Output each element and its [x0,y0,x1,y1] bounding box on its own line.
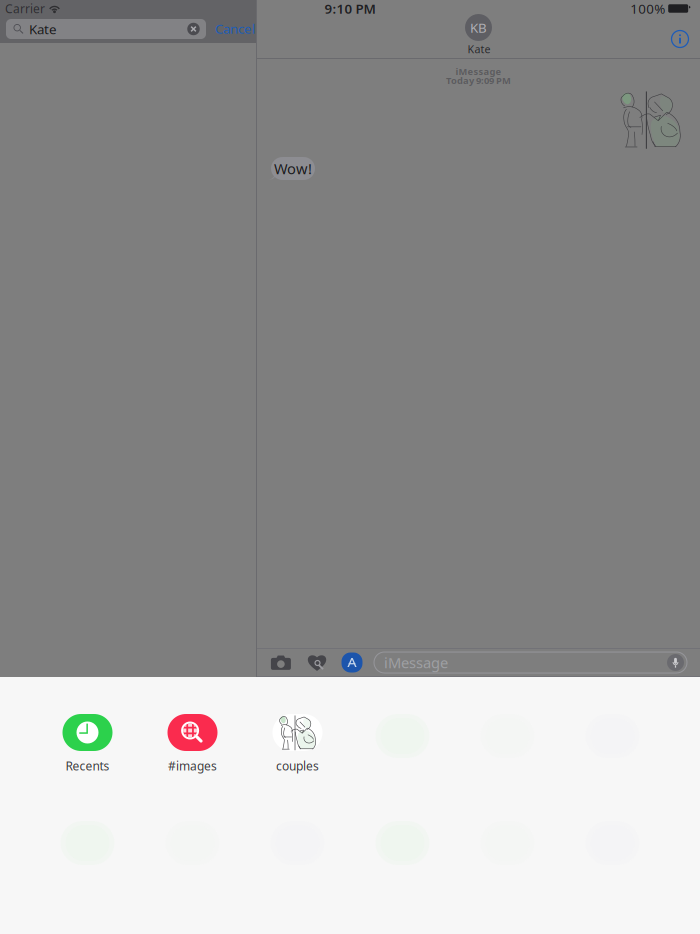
button[interactable]: App Store [339,649,365,675]
staticText: Wow! [274,159,312,178]
button[interactable]: Camera [268,649,294,675]
staticText: Cancel [215,20,255,37]
staticText: Kate [29,20,57,38]
staticText: 100% [630,0,665,17]
staticText: Carrier [5,0,45,16]
staticText: Kate [467,42,490,56]
button[interactable]: Details [665,24,695,54]
button[interactable]: Digital Touch [304,649,330,675]
button[interactable]: Cancel [215,18,255,39]
staticText: KB [470,19,487,36]
staticText: Today 9:09 PM [446,74,511,87]
staticText: iMessage [384,653,448,672]
staticText: couples [276,758,319,774]
button[interactable]: #images [140,714,245,776]
staticText: iMessage [455,65,501,78]
staticText: #images [168,758,217,774]
button[interactable]: couples [245,714,350,776]
button[interactable]: Recents [35,714,140,776]
staticText: 9:10 PM [324,0,375,17]
staticText: Recents [65,758,109,774]
